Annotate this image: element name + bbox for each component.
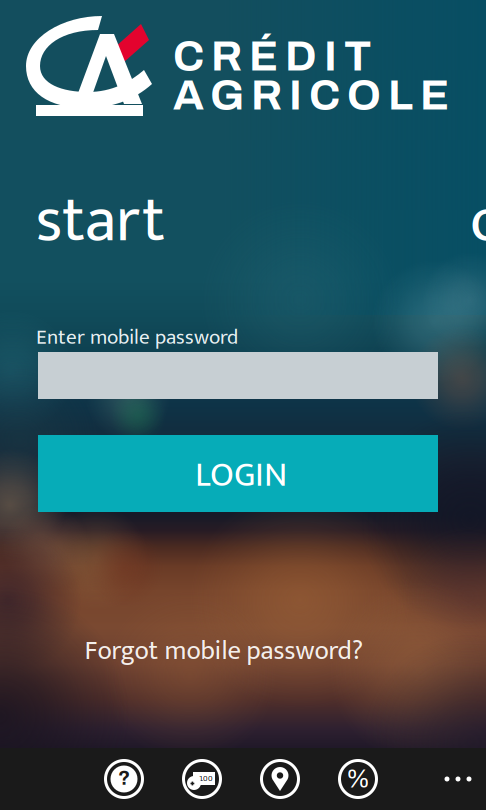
staticText: LOGIN xyxy=(195,447,287,504)
staticText: AGRICOLE xyxy=(173,72,449,118)
button[interactable]: LOGIN xyxy=(38,435,438,512)
staticText: % xyxy=(346,765,370,793)
staticText: 100 xyxy=(199,774,213,783)
staticText: start xyxy=(36,168,165,274)
staticText: ? xyxy=(118,767,130,789)
button[interactable]: Help xyxy=(102,757,146,801)
button[interactable]: Forgot mobile password? xyxy=(74,634,374,668)
button[interactable]: Rates xyxy=(336,757,380,801)
button[interactable]: Withdraw cash xyxy=(180,757,224,801)
button[interactable]: Find a branch xyxy=(258,757,302,801)
staticText: o xyxy=(470,168,486,274)
staticText: Forgot mobile password? xyxy=(84,629,363,673)
staticText: CRÉDIT xyxy=(173,33,371,79)
button[interactable]: More options xyxy=(430,748,486,810)
staticText: Enter mobile password xyxy=(36,320,238,355)
